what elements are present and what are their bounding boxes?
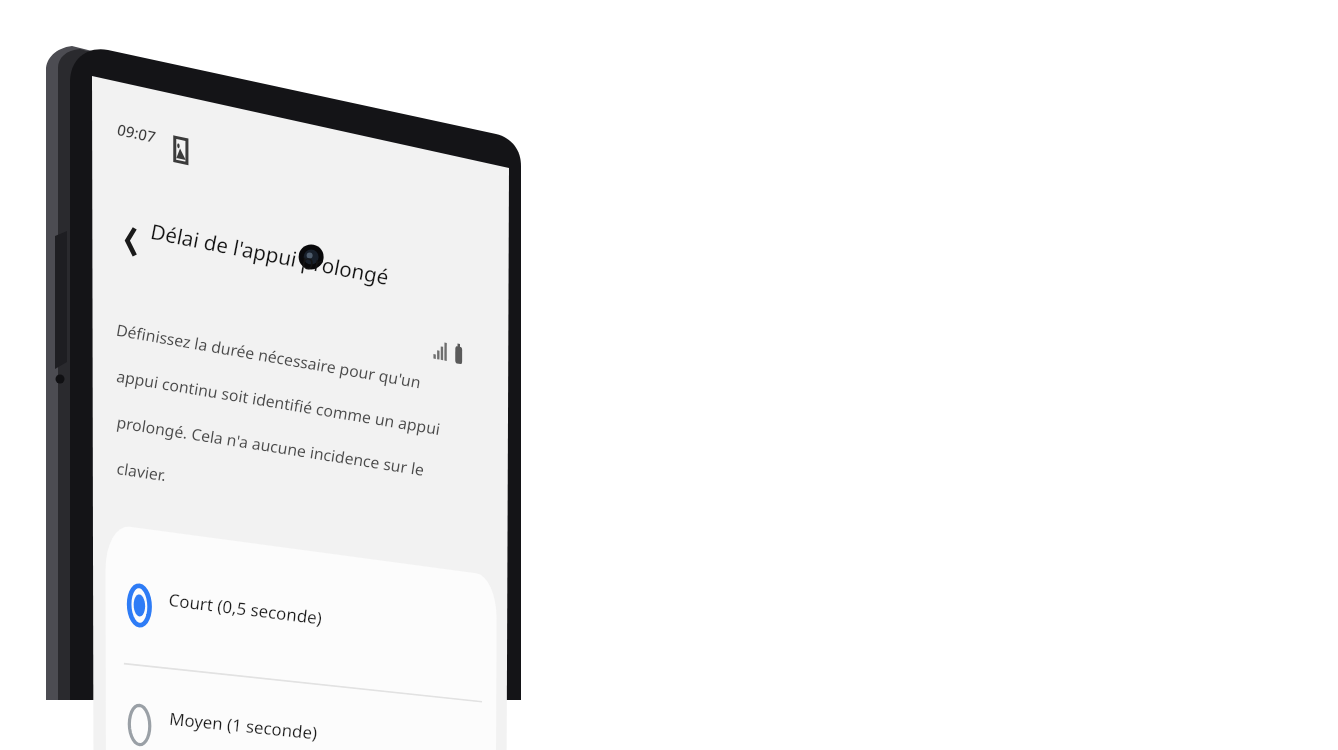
button[interactable]: Moyen (1 seconde) [100,422,502,488]
button[interactable]: Long (1,5 seconde) [100,488,502,554]
button[interactable]: Back [110,126,154,170]
button[interactable]: Court (0,5 seconde) [100,356,502,422]
button[interactable]: Personnaliser [100,554,502,620]
